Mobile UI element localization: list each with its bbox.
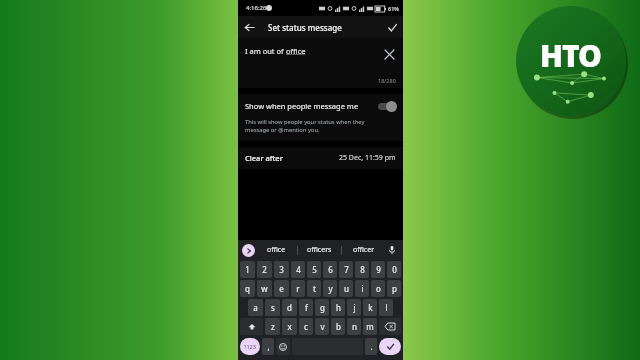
button[interactable]: Expand toolbar xyxy=(242,244,255,257)
staticText: I am out of xyxy=(245,46,286,56)
button[interactable]: v xyxy=(315,318,329,335)
staticText: 0 xyxy=(392,264,397,275)
staticText: a xyxy=(253,302,258,313)
staticText: e xyxy=(279,283,284,294)
button[interactable]: b xyxy=(331,318,345,335)
button[interactable]: o xyxy=(371,280,385,297)
button[interactable]: 2 xyxy=(257,261,272,278)
button[interactable]: , xyxy=(262,338,274,355)
button[interactable]: Backspace xyxy=(379,318,401,335)
staticText: 61% xyxy=(388,5,399,12)
staticText: j xyxy=(353,302,356,313)
button[interactable]: i xyxy=(355,280,369,297)
button[interactable]: Clear text xyxy=(381,46,397,62)
staticText: office xyxy=(286,46,306,56)
staticText: r xyxy=(296,283,300,294)
button[interactable]: Save status xyxy=(381,16,403,38)
staticText: 1 xyxy=(245,264,250,275)
button[interactable]: 9 xyxy=(371,261,385,278)
button[interactable]: ?123 xyxy=(240,338,260,355)
button[interactable]: j xyxy=(347,299,361,316)
button[interactable]: y xyxy=(323,280,337,297)
button[interactable]: office xyxy=(255,240,297,260)
staticText: Clear after xyxy=(245,153,339,163)
button[interactable]: c xyxy=(299,318,313,335)
staticText: 4 xyxy=(296,264,301,275)
button[interactable]: officer xyxy=(342,240,385,260)
button[interactable]: Back xyxy=(238,16,260,38)
button[interactable]: a xyxy=(248,299,263,316)
button[interactable]: 4 xyxy=(291,261,305,278)
staticText: v xyxy=(320,321,325,332)
staticText: y xyxy=(328,283,333,294)
staticText: 4:16:26 xyxy=(246,4,267,12)
button[interactable]: 7 xyxy=(339,261,353,278)
button[interactable]: f xyxy=(299,299,313,316)
button[interactable]: h xyxy=(331,299,345,316)
staticText: c xyxy=(304,321,308,332)
button[interactable]: u xyxy=(339,280,353,297)
button[interactable]: Shift xyxy=(240,318,263,335)
staticText: d xyxy=(287,302,292,313)
button[interactable]: z xyxy=(265,318,280,335)
staticText: 5 xyxy=(312,264,317,275)
button[interactable]: 1 xyxy=(240,261,255,278)
button[interactable]: 3 xyxy=(274,261,289,278)
staticText: 8 xyxy=(360,264,365,275)
staticText: HTO xyxy=(540,35,602,76)
staticText: . xyxy=(370,341,373,352)
button[interactable]: 6 xyxy=(323,261,337,278)
staticText: q xyxy=(245,283,250,294)
staticText: m xyxy=(366,321,374,332)
staticText: 7 xyxy=(344,264,349,275)
staticText: o xyxy=(376,283,381,294)
staticText: Set status message xyxy=(268,22,342,33)
staticText: x xyxy=(287,321,292,332)
button[interactable]: t xyxy=(307,280,321,297)
staticText: , xyxy=(267,341,270,352)
button[interactable]: Emoji xyxy=(276,338,290,355)
staticText: n xyxy=(352,321,357,332)
button[interactable]: k xyxy=(363,299,377,316)
button[interactable]: q xyxy=(240,280,255,297)
button[interactable]: officers xyxy=(298,240,341,260)
button[interactable]: n xyxy=(347,318,361,335)
staticText: This will show people your status when t… xyxy=(245,118,389,134)
button[interactable]: e xyxy=(274,280,289,297)
staticText: t xyxy=(313,283,316,294)
button[interactable]: p xyxy=(387,280,401,297)
staticText: Show when people message me xyxy=(245,101,378,111)
button[interactable]: 8 xyxy=(355,261,369,278)
button[interactable]: r xyxy=(291,280,305,297)
staticText: 18/280 xyxy=(378,77,396,84)
staticText: l xyxy=(385,302,388,313)
staticText: g xyxy=(320,302,325,313)
button[interactable]: x xyxy=(282,318,297,335)
staticText: 9 xyxy=(376,264,381,275)
staticText: z xyxy=(271,321,275,332)
staticText: 6 xyxy=(328,264,333,275)
button[interactable]: . xyxy=(365,338,377,355)
button[interactable]: s xyxy=(265,299,280,316)
button[interactable]: m xyxy=(363,318,377,335)
staticText: p xyxy=(392,283,397,294)
staticText: 3 xyxy=(279,264,284,275)
staticText: 2 xyxy=(262,264,267,275)
staticText: h xyxy=(336,302,341,313)
button[interactable]: l xyxy=(379,299,393,316)
staticText: k xyxy=(368,302,373,313)
button[interactable]: Voice input xyxy=(385,243,399,257)
button[interactable]: g xyxy=(315,299,329,316)
button[interactable]: 5 xyxy=(307,261,321,278)
button[interactable]: Enter xyxy=(379,338,401,355)
button[interactable]: 0 xyxy=(387,261,401,278)
staticText: f xyxy=(305,302,308,313)
staticText: ?123 xyxy=(244,343,256,350)
button[interactable]: Show when people message me xyxy=(238,94,403,118)
button[interactable]: w xyxy=(257,280,272,297)
button[interactable]: d xyxy=(282,299,297,316)
staticText: w xyxy=(261,283,268,294)
staticText: 25 Dec, 11:59 pm xyxy=(339,153,396,163)
button[interactable]: Clear after xyxy=(238,147,403,169)
